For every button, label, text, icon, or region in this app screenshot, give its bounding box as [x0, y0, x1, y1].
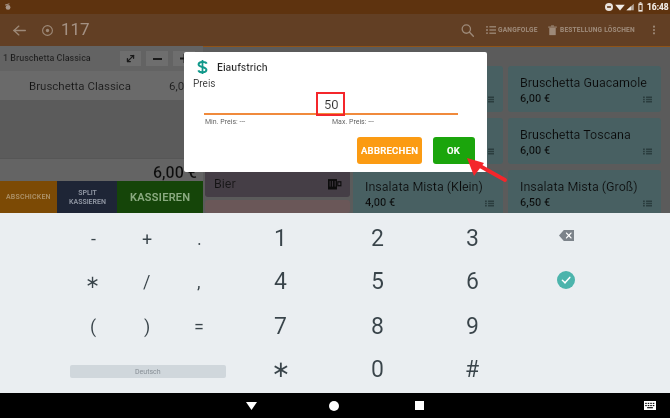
- button[interactable]: Enter: [557, 271, 575, 289]
- staticText: 117: [61, 19, 90, 39]
- staticText: 5: [371, 268, 384, 295]
- button[interactable]: BESTELLUNG LÖSCHEN: [546, 19, 637, 41]
- staticText: Deutsch: [135, 368, 161, 376]
- staticText: Bruschetta Guacamole: [520, 75, 647, 90]
- staticText: 6,00 €: [520, 92, 551, 105]
- button[interactable]: Decrease: [146, 51, 168, 66]
- staticText: 0: [371, 356, 384, 383]
- button[interactable]: ∗: [67, 260, 119, 303]
- staticText: (: [90, 316, 97, 337]
- button[interactable]: Home: [319, 393, 349, 418]
- button[interactable]: ABBRECHEN: [357, 137, 422, 164]
- button[interactable]: 5: [330, 260, 425, 303]
- button[interactable]: Switch keyboard: [638, 393, 662, 418]
- button[interactable]: -: [67, 217, 119, 260]
- button[interactable]: 9: [425, 305, 520, 348]
- staticText: 6,00 €: [520, 144, 551, 157]
- staticText: 4,00 €: [365, 196, 396, 209]
- staticText: =: [194, 316, 204, 337]
- button[interactable]: 0: [330, 348, 425, 391]
- staticText: 50: [324, 97, 339, 112]
- button[interactable]: KASSIEREN: [117, 181, 203, 213]
- staticText: 6,00 €: [153, 163, 197, 182]
- button[interactable]: More options: [643, 19, 665, 41]
- button[interactable]: =: [173, 305, 225, 348]
- staticText: 6,50 €: [520, 196, 551, 209]
- staticText: Insalata Mista (Klein): [365, 179, 483, 194]
- staticText: #: [465, 356, 480, 383]
- staticText: 6,00 €: [169, 79, 200, 92]
- button[interactable]: Menu item: [353, 66, 503, 112]
- button[interactable]: .: [173, 217, 225, 260]
- staticText: GANGFOLGE: [498, 26, 538, 34]
- staticText: 1: [274, 225, 287, 252]
- staticText: 4: [274, 268, 287, 295]
- staticText: Insalata Mista (Groß): [520, 179, 638, 194]
- staticText: Max. Preis: ---: [332, 118, 374, 126]
- button[interactable]: GANGFOLGE: [484, 19, 540, 41]
- staticText: Eiaufstrich: [217, 61, 268, 73]
- staticText: 1 Bruschetta Classica: [3, 53, 91, 64]
- staticText: 3: [466, 225, 479, 252]
- button[interactable]: Pizza Funghi: [205, 118, 350, 164]
- button[interactable]: Increase: [173, 51, 195, 66]
- button[interactable]: ,: [173, 260, 225, 303]
- button[interactable]: [0, 71, 203, 100]
- button[interactable]: Bruschetta Guacamole: [508, 66, 661, 112]
- staticText: KASSIEREN: [130, 191, 191, 204]
- button[interactable]: Pizza Margherita: [205, 66, 350, 112]
- button[interactable]: ABSCHICKEN: [0, 181, 57, 213]
- button[interactable]: Bruschetta Toscana: [508, 118, 661, 164]
- staticText: ): [144, 316, 151, 337]
- button[interactable]: ∗: [233, 348, 328, 391]
- button[interactable]: Insalata Mista (Klein): [353, 170, 503, 216]
- staticText: -: [91, 228, 96, 249]
- button[interactable]: +: [121, 217, 173, 260]
- button[interactable]: Backspace: [549, 221, 583, 249]
- button[interactable]: Recent apps: [404, 393, 434, 418]
- staticText: ABSCHICKEN: [6, 193, 51, 201]
- staticText: .: [197, 228, 202, 249]
- staticText: Min. Preis: ---: [205, 118, 246, 126]
- button[interactable]: SPLIT KASSIEREN: [57, 181, 117, 213]
- staticText: 8: [371, 313, 384, 340]
- button[interactable]: OK: [433, 137, 475, 164]
- button[interactable]: Deutsch: [70, 365, 226, 378]
- button[interactable]: 2: [330, 217, 425, 260]
- button[interactable]: /: [121, 260, 173, 303]
- button[interactable]: Bier: [205, 170, 350, 197]
- button[interactable]: 3: [425, 217, 520, 260]
- button[interactable]: Back: [8, 19, 30, 41]
- staticText: ∗: [271, 356, 291, 383]
- staticText: Bier: [214, 176, 236, 191]
- button[interactable]: 1: [233, 217, 328, 260]
- button[interactable]: ): [121, 305, 173, 348]
- staticText: OK: [447, 145, 461, 156]
- button[interactable]: 4: [233, 260, 328, 303]
- staticText: Bruschetta Classica: [29, 79, 131, 92]
- staticText: /: [143, 271, 151, 292]
- button[interactable]: #: [425, 348, 520, 391]
- button[interactable]: 8: [330, 305, 425, 348]
- staticText: 16:48: [647, 2, 669, 12]
- button[interactable]: (: [67, 305, 119, 348]
- staticText: ABBRECHEN: [361, 145, 419, 156]
- button[interactable]: Expand: [120, 51, 141, 66]
- staticText: 9: [466, 313, 479, 340]
- staticText: 6: [466, 268, 479, 295]
- staticText: +: [142, 228, 153, 249]
- button[interactable]: Table: [38, 21, 56, 39]
- staticText: ,: [197, 271, 201, 292]
- button[interactable]: 6: [425, 260, 520, 303]
- staticText: SPLIT KASSIEREN: [69, 189, 106, 206]
- staticText: Preis: [193, 78, 216, 90]
- button[interactable]: Insalata Mista (Groß): [508, 170, 661, 216]
- button[interactable]: Hide keyboard: [236, 393, 266, 418]
- button[interactable]: Menu item: [353, 118, 503, 164]
- button[interactable]: 7: [233, 305, 328, 348]
- button[interactable]: Search: [454, 17, 480, 43]
